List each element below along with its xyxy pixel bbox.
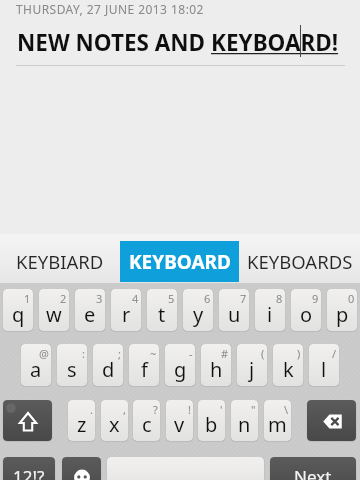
staticText: KEYBOARD! (211, 27, 339, 58)
staticText: g (174, 356, 187, 383)
staticText: n (238, 411, 251, 438)
button[interactable]: l (309, 344, 339, 386)
button[interactable]: Shift (3, 400, 52, 441)
button[interactable]: k (273, 344, 303, 386)
button[interactable]: d (93, 344, 123, 386)
staticText: s (67, 356, 77, 383)
staticText: v (174, 411, 185, 438)
staticText: - (189, 346, 193, 361)
staticText: l (321, 356, 327, 383)
staticText: 6 (204, 291, 211, 306)
button[interactable]: c (133, 400, 160, 441)
button[interactable]: n (231, 400, 258, 441)
button[interactable]: z (68, 400, 95, 441)
staticText: KEYBOARDS (247, 249, 353, 274)
button[interactable]: Emoji (62, 457, 101, 480)
staticText: ; (118, 346, 121, 361)
staticText: NEW NOTES AND (17, 27, 211, 58)
staticText: f (141, 356, 148, 383)
staticText: k (283, 356, 294, 383)
staticText: p (336, 301, 349, 328)
button[interactable]: u (219, 289, 249, 331)
staticText: h (210, 356, 223, 383)
button[interactable]: g (165, 344, 195, 386)
button[interactable]: i (255, 289, 285, 331)
staticText: m (268, 411, 287, 438)
staticText: KEYBIARD (16, 249, 104, 274)
staticText: u (228, 301, 241, 328)
button[interactable]: m (264, 400, 291, 441)
staticText: . (90, 402, 93, 417)
staticText: d (102, 356, 115, 383)
button[interactable]: h (201, 344, 231, 386)
button[interactable]: o (291, 289, 321, 331)
button[interactable]: KEYBOARD (120, 241, 239, 282)
staticText: 1 (24, 291, 31, 306)
staticText: q (12, 301, 25, 328)
staticText: ~ (150, 346, 157, 361)
staticText: ) (297, 346, 301, 361)
button[interactable]: j (237, 344, 267, 386)
staticText: 4 (132, 291, 139, 306)
staticText: 7 (240, 291, 247, 306)
staticText: # (221, 346, 229, 361)
staticText: c (142, 411, 152, 438)
staticText: 0 (348, 291, 355, 306)
staticText: @ (39, 346, 49, 361)
staticText: KEYBOARD (129, 249, 231, 275)
button[interactable]: Next (270, 457, 356, 480)
staticText: 12!? (13, 465, 45, 480)
button[interactable]: Backspace (307, 400, 356, 441)
button[interactable]: 12!? (3, 457, 55, 480)
staticText: ' (220, 402, 223, 417)
staticText: " (251, 402, 256, 417)
staticText: j (249, 356, 255, 383)
staticText: i (267, 301, 273, 328)
button[interactable]: e (75, 289, 105, 331)
button[interactable]: a (21, 344, 51, 386)
staticText: THURSDAY, 27 JUNE 2013 18:02 (16, 1, 204, 17)
button[interactable]: b (198, 400, 225, 441)
staticText: a (30, 356, 42, 383)
button[interactable]: x (101, 400, 128, 441)
staticText: 8 (276, 291, 283, 306)
button[interactable]: KEYBIARD (0, 241, 120, 282)
staticText: 9 (312, 291, 319, 306)
staticText: ? (153, 402, 158, 417)
button[interactable]: y (183, 289, 213, 331)
staticText: z (77, 411, 87, 438)
staticText: 3 (96, 291, 103, 306)
button[interactable]: KEYBOARDS (240, 241, 360, 282)
staticText: t (158, 301, 166, 328)
staticText: \ (284, 402, 289, 417)
button[interactable]: p (327, 289, 357, 331)
button[interactable]: f (129, 344, 159, 386)
button[interactable]: v (166, 400, 193, 441)
staticText: ! (188, 402, 191, 417)
staticText: r (122, 301, 131, 328)
staticText: : (82, 346, 85, 361)
staticText: o (300, 301, 313, 328)
staticText: 5 (168, 291, 175, 306)
staticText: w (46, 301, 62, 328)
staticText: e (84, 301, 96, 328)
staticText: b (205, 411, 218, 438)
button[interactable]: s (57, 344, 87, 386)
button[interactable]: t (147, 289, 177, 331)
staticText: x (109, 411, 120, 438)
staticText: ( (261, 346, 265, 361)
staticText: Next (294, 465, 332, 480)
staticText: 2 (60, 291, 67, 306)
button[interactable]: r (111, 289, 141, 331)
button[interactable]: q (3, 289, 33, 331)
button[interactable]: w (39, 289, 69, 331)
staticText: / (332, 346, 337, 361)
staticText: y (193, 301, 204, 328)
staticText: , (123, 402, 126, 417)
